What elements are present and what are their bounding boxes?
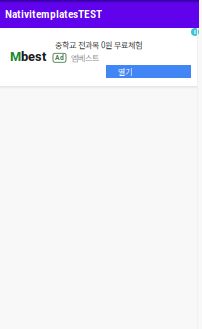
staticText: M xyxy=(10,49,21,64)
staticText: 중학교 전과목 0원 무료체험 xyxy=(55,39,142,51)
staticText: 엠베스트 xyxy=(71,52,99,64)
staticText: Ad xyxy=(55,54,64,62)
button[interactable]: 열기 xyxy=(106,65,191,78)
staticText: NativitemplatesTEST xyxy=(5,7,102,21)
staticText: best xyxy=(21,49,46,64)
staticText: 열기 xyxy=(118,66,132,77)
